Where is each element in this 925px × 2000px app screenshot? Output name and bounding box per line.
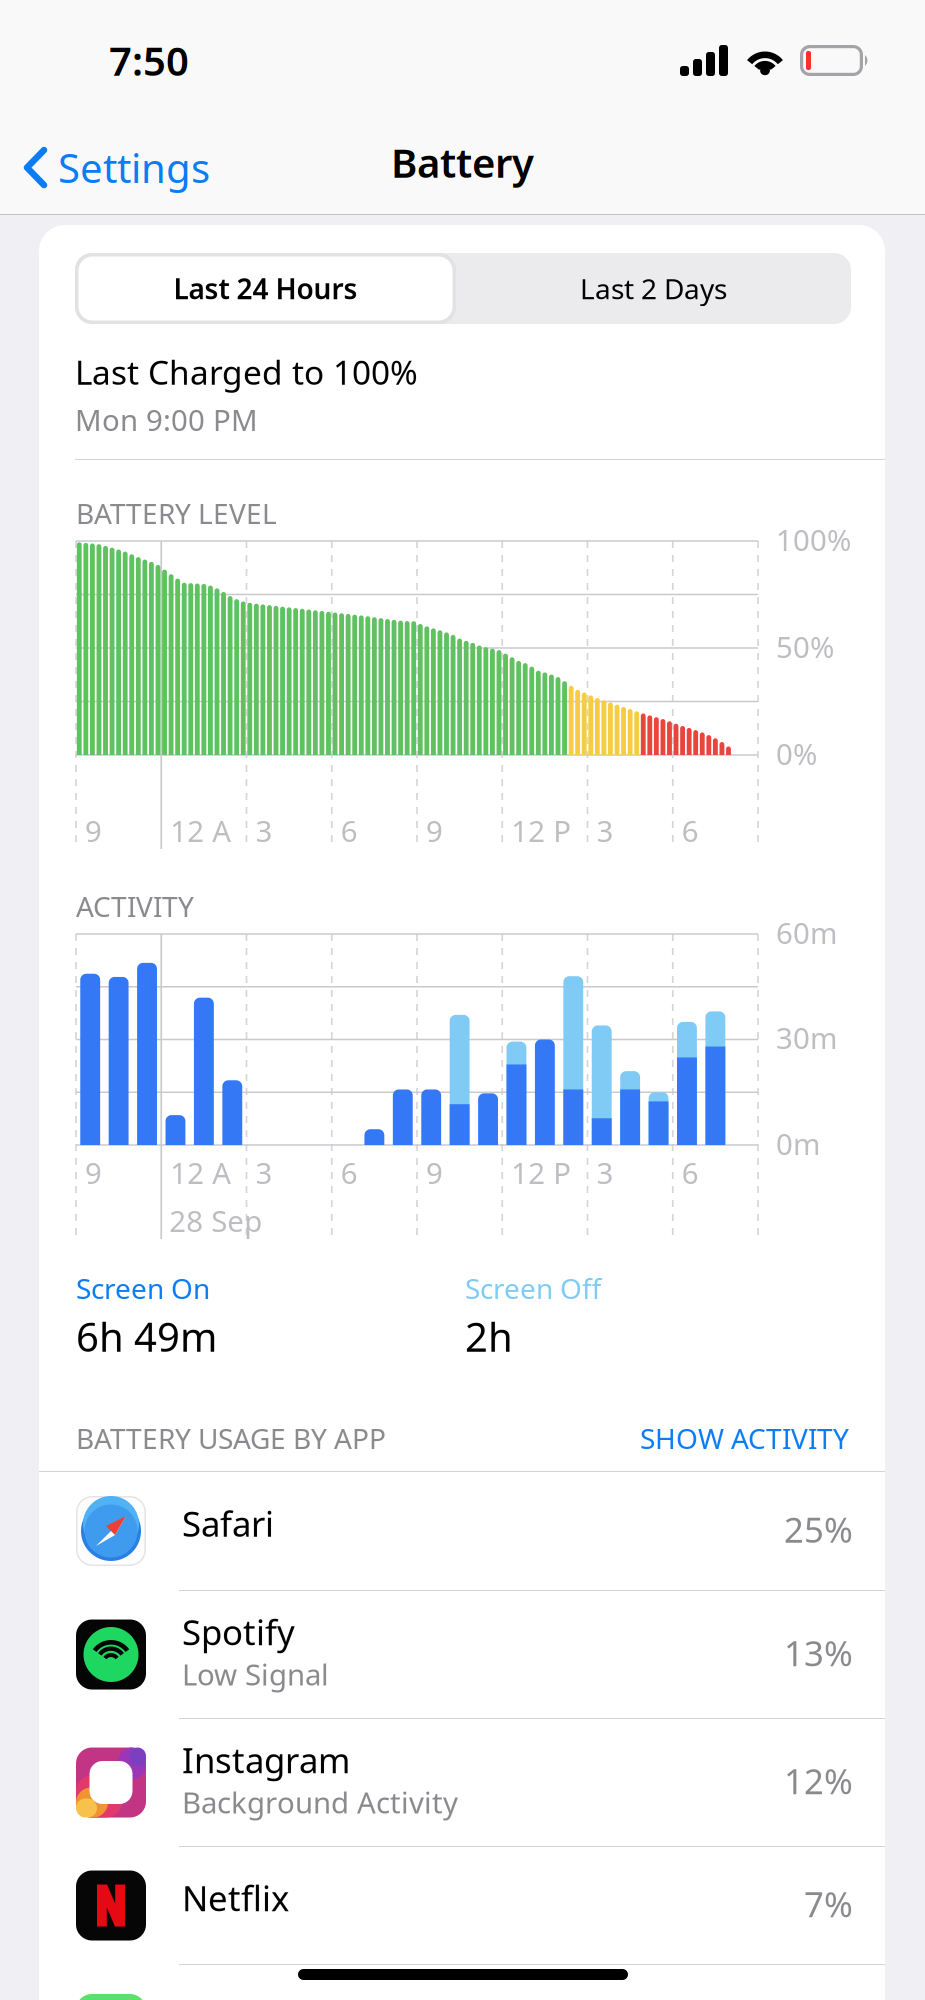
staticText: Settings [58, 141, 210, 194]
button[interactable]: Last 2 Days [456, 253, 851, 324]
button[interactable]: Safari [39, 1472, 885, 1590]
button[interactable]: Netflix [39, 1847, 885, 1964]
staticText: Low Signal [182, 1654, 329, 1693]
staticText: Background Activity [182, 1782, 458, 1821]
staticText: 12 A [170, 811, 231, 850]
button[interactable]: Settings [4, 125, 226, 210]
staticText: 3 [255, 1153, 272, 1192]
staticText: Last Charged to 100% [75, 350, 418, 394]
staticText: SHOW ACTIVITY [640, 1419, 849, 1457]
staticText: Screen On [76, 1269, 210, 1307]
staticText: Battery [391, 136, 534, 189]
staticText: 3 [255, 811, 272, 850]
button[interactable]: SHOW ACTIVITY [39, 225, 885, 285]
staticText: Mon 9:00 PM [75, 400, 258, 439]
staticText: 9 [85, 1153, 102, 1192]
staticText: 7% [804, 1881, 853, 1927]
staticText: 6 [341, 1153, 358, 1192]
staticText: 6 [682, 1153, 699, 1192]
staticText: 7:50 [109, 34, 189, 87]
button[interactable]: Last 24 Hours [75, 253, 456, 324]
staticText: Netflix [182, 1875, 289, 1921]
staticText: 25% [784, 1506, 853, 1552]
staticText: 0m [776, 1124, 820, 1163]
staticText: 3 [596, 1153, 613, 1192]
staticText: 12 A [170, 1153, 231, 1192]
button[interactable]: Spotify [39, 1591, 885, 1718]
staticText: Safari [182, 1500, 274, 1546]
staticText: 12 P [511, 1153, 571, 1192]
staticText: 12 P [511, 811, 571, 850]
staticText: ACTIVITY [76, 887, 194, 925]
staticText: Instagram [182, 1737, 350, 1783]
staticText: 9 [85, 811, 102, 850]
staticText: 9 [426, 811, 443, 850]
button[interactable]: Instagram [39, 1719, 885, 1846]
staticText: 30m [776, 1018, 837, 1057]
staticText: BATTERY USAGE BY APP [76, 1419, 386, 1457]
staticText: 3 [596, 811, 613, 850]
staticText: Last 24 Hours [173, 270, 357, 307]
staticText: BATTERY LEVEL [76, 494, 277, 532]
staticText: 60m [776, 913, 837, 952]
staticText: 0% [776, 734, 817, 773]
staticText: 2h [465, 1310, 513, 1363]
staticText: Last 2 Days [580, 270, 727, 307]
staticText: 6h 49m [76, 1310, 217, 1363]
staticText: Spotify [182, 1609, 295, 1655]
staticText: 28 Sep [169, 1201, 262, 1240]
staticText: 9 [426, 1153, 443, 1192]
staticText: Screen Off [465, 1269, 601, 1307]
staticText: 6 [341, 811, 358, 850]
button[interactable]: WhatsApp [39, 1965, 885, 2000]
staticText: 50% [776, 627, 834, 666]
staticText: 13% [784, 1630, 853, 1676]
staticText: 6 [682, 811, 699, 850]
staticText: 100% [776, 520, 851, 559]
staticText: 12% [784, 1758, 853, 1804]
